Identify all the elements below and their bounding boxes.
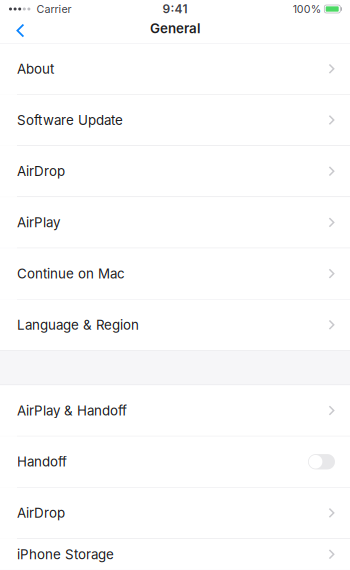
button[interactable]: About: [0, 43, 350, 94]
button[interactable]: Handoff: [308, 454, 335, 469]
button[interactable]: iPhone Storage: [0, 539, 350, 570]
staticText: iPhone Storage: [17, 546, 114, 562]
button[interactable]: Continue on Mac: [0, 248, 350, 299]
button[interactable]: Software Update: [0, 95, 350, 145]
staticText: Carrier: [30, 2, 71, 15]
staticText: Continue on Mac: [17, 266, 125, 282]
button[interactable]: AirPlay & Handoff: [0, 385, 350, 436]
staticText: General: [150, 20, 200, 36]
button[interactable]: Back: [0, 24, 35, 41]
staticText: 9:41: [162, 2, 187, 16]
button[interactable]: Language & Region: [0, 299, 350, 350]
staticText: Software Update: [17, 112, 123, 128]
staticText: Language & Region: [17, 317, 139, 333]
staticText: AirPlay: [17, 214, 60, 230]
staticText: AirPlay & Handoff: [17, 402, 127, 419]
button[interactable]: AirDrop: [0, 488, 350, 538]
button[interactable]: AirDrop: [0, 146, 350, 197]
button[interactable]: AirPlay: [0, 197, 350, 248]
staticText: 100%: [293, 2, 321, 15]
staticText: AirDrop: [17, 505, 65, 521]
staticText: Handoff: [17, 454, 67, 470]
staticText: About: [17, 61, 54, 77]
staticText: AirDrop: [17, 163, 65, 179]
